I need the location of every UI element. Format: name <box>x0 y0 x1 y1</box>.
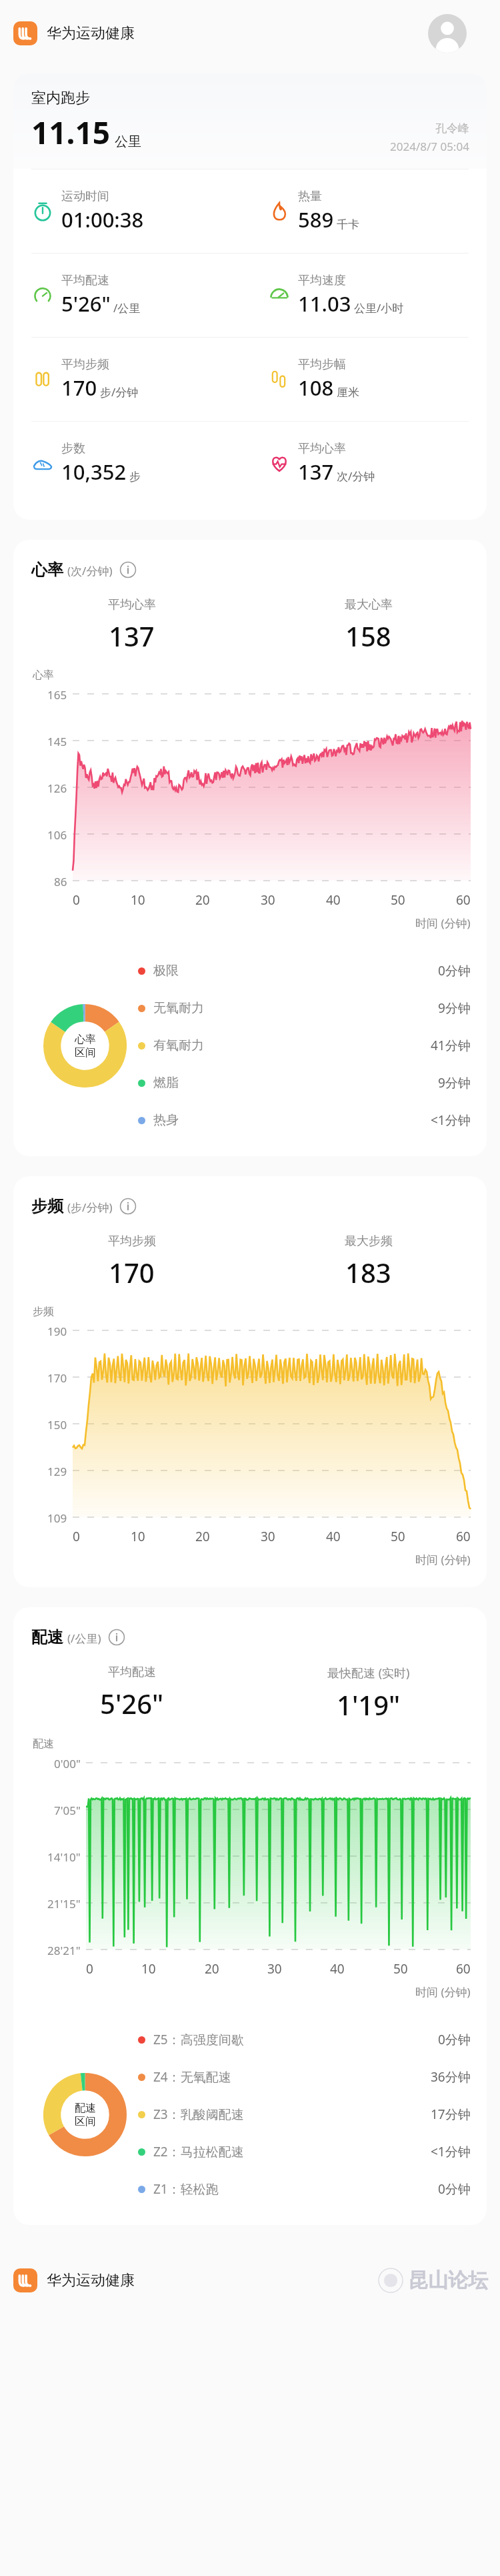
staticText: 20 <box>195 1528 210 1545</box>
staticText: 86 <box>54 874 67 887</box>
staticText: 最大步频 <box>345 1234 393 1249</box>
staticText: /公里 <box>113 300 141 316</box>
staticText: 170 <box>109 1254 155 1290</box>
staticText: Z5：高强度间歇 <box>153 2031 244 2048</box>
button[interactable]: 有氧耐力 <box>138 1027 471 1064</box>
staticText: 40 <box>330 1960 345 1978</box>
staticText: 60 <box>456 891 471 909</box>
staticText: 热量 <box>298 189 322 204</box>
staticText: 165 <box>47 687 67 701</box>
staticText: 41分钟 <box>431 1037 471 1054</box>
staticText: 区间 <box>75 2115 96 2128</box>
staticText: 30 <box>261 1528 275 1545</box>
staticText: 50 <box>391 891 405 909</box>
staticText: 平均步频 <box>108 1234 156 1249</box>
staticText: 10 <box>141 1960 156 1978</box>
staticText: 厘米 <box>337 386 359 400</box>
staticText: 0分钟 <box>438 2180 471 2198</box>
button[interactable]: 燃脂 <box>138 1064 471 1102</box>
staticText: 60 <box>456 1528 471 1545</box>
staticText: 183 <box>345 1254 391 1290</box>
staticText: 步数 <box>61 441 85 456</box>
button[interactable]: Z4：无氧配速 <box>138 2058 471 2096</box>
staticText: 170 <box>47 1370 67 1384</box>
staticText: 平均配速 <box>61 273 109 288</box>
staticText: 190 <box>47 1324 67 1337</box>
staticText: 5'26" <box>100 1685 164 1721</box>
staticText: 无氧耐力 <box>153 1000 204 1016</box>
staticText: 心率 <box>33 669 54 682</box>
staticText: 1'19" <box>337 1687 401 1723</box>
staticText: 步频 <box>31 1196 63 1216</box>
button[interactable]: 平均步幅 <box>268 338 487 421</box>
staticText: (步/分钟) <box>67 1200 113 1215</box>
staticText: 30 <box>261 891 275 909</box>
staticText: 步 <box>129 470 141 484</box>
staticText: 0 <box>73 891 80 909</box>
staticText: 燃脂 <box>153 1075 179 1091</box>
staticText: 区间 <box>75 1046 96 1059</box>
button[interactable]: 无氧耐力 <box>138 989 471 1027</box>
staticText: 华为运动健康 <box>47 24 135 43</box>
staticText: 时间 (分钟) <box>415 1984 471 2000</box>
staticText: 极限 <box>153 963 179 979</box>
button[interactable]: 华为运动健康 <box>13 2268 135 2292</box>
button[interactable]: 运动时间 <box>31 169 250 253</box>
staticText: <1分钟 <box>431 1112 471 1129</box>
button[interactable]: Z5：高强度间歇 <box>138 2021 471 2058</box>
staticText: 平均配速 <box>108 1665 156 1680</box>
staticText: Z2：马拉松配速 <box>153 2143 244 2160</box>
staticText: 9分钟 <box>438 1074 471 1092</box>
button[interactable]: 华为运动健康 <box>13 21 135 45</box>
button[interactable]: Z2：马拉松配速 <box>138 2133 471 2170</box>
staticText: 次/分钟 <box>337 468 375 484</box>
staticText: 20 <box>195 891 210 909</box>
staticText: 109 <box>47 1511 67 1524</box>
button[interactable]: 心率 <box>31 560 137 580</box>
staticText: 50 <box>393 1960 408 1978</box>
button[interactable]: Info <box>108 1629 125 1646</box>
button[interactable]: 平均心率 <box>268 422 487 505</box>
button[interactable]: 步频 <box>31 1196 137 1216</box>
staticText: 有氧耐力 <box>153 1037 204 1053</box>
button[interactable]: 极限 <box>138 952 471 989</box>
button[interactable]: Z3：乳酸阈配速 <box>138 2096 471 2133</box>
staticText: 心率 <box>31 560 63 580</box>
staticText: 平均步幅 <box>298 357 346 372</box>
button[interactable]: 热身 <box>138 1102 471 1139</box>
staticText: Z1：轻松跑 <box>153 2180 219 2198</box>
button[interactable]: 配速 <box>31 1627 125 1647</box>
staticText: 11.15 <box>31 111 111 153</box>
button[interactable]: 平均步频 <box>31 338 250 421</box>
staticText: 129 <box>47 1464 67 1477</box>
staticText: Z3：乳酸阈配速 <box>153 2106 244 2123</box>
staticText: 公里 <box>115 133 141 150</box>
staticText: 40 <box>326 1528 341 1545</box>
button[interactable]: 平均速度 <box>268 254 487 337</box>
staticText: 10 <box>131 1528 145 1545</box>
button[interactable]: Z1：轻松跑 <box>138 2170 471 2208</box>
staticText: 0 <box>73 1528 80 1545</box>
staticText: 150 <box>47 1417 67 1430</box>
staticText: 50 <box>391 1528 405 1545</box>
staticText: 最快配速 (实时) <box>327 1665 410 1681</box>
staticText: 9分钟 <box>438 999 471 1017</box>
button[interactable]: Info <box>119 561 137 578</box>
staticText: 0分钟 <box>438 962 471 979</box>
staticText: 14'10" <box>47 1849 81 1863</box>
staticText: 21'15" <box>47 1896 81 1909</box>
button[interactable]: 室内跑步 <box>13 73 487 169</box>
button[interactable]: 平均配速 <box>31 254 250 337</box>
staticText: 步频 <box>33 1305 54 1318</box>
button[interactable]: 步数 <box>31 422 250 505</box>
staticText: 0'00" <box>54 1756 81 1769</box>
staticText: (/公里) <box>67 1631 101 1646</box>
button[interactable]: Profile <box>428 14 467 53</box>
staticText: 昆山论坛 <box>408 2268 488 2293</box>
staticText: 137 <box>298 458 334 486</box>
staticText: 170 <box>61 374 97 402</box>
staticText: 106 <box>47 827 67 841</box>
staticText: 2024/8/7 05:04 <box>390 139 469 154</box>
button[interactable]: 热量 <box>268 169 487 253</box>
button[interactable]: Info <box>119 1198 137 1215</box>
